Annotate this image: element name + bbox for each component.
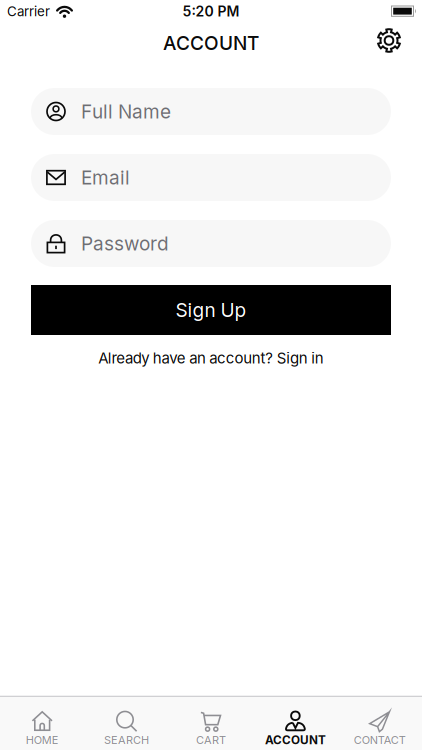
- button[interactable]: Email: [31, 154, 391, 201]
- staticText: Already have an account? Sign in: [98, 349, 324, 367]
- staticText: CONTACT: [354, 733, 406, 746]
- button[interactable]: CONTACT: [338, 710, 422, 746]
- staticText: Carrier: [7, 3, 50, 19]
- button[interactable]: Full Name: [31, 88, 391, 135]
- button[interactable]: HOME: [0, 710, 84, 746]
- staticText: Email: [81, 166, 130, 189]
- staticText: Password: [81, 232, 169, 255]
- staticText: SEARCH: [104, 733, 149, 746]
- button[interactable]: Sign Up: [31, 285, 391, 335]
- button[interactable]: ACCOUNT: [253, 710, 338, 747]
- button[interactable]: CART: [169, 710, 253, 746]
- button[interactable]: Settings: [376, 27, 402, 53]
- button[interactable]: Already have an account? Sign in: [98, 349, 324, 367]
- button[interactable]: Password: [31, 220, 391, 267]
- staticText: Full Name: [81, 100, 171, 123]
- staticText: Sign Up: [175, 298, 246, 321]
- staticText: HOME: [26, 733, 59, 746]
- staticText: 5:20 PM: [182, 3, 239, 20]
- button[interactable]: SEARCH: [84, 710, 169, 746]
- staticText: ACCOUNT: [163, 31, 259, 54]
- staticText: CART: [196, 733, 226, 746]
- staticText: ACCOUNT: [265, 733, 326, 747]
